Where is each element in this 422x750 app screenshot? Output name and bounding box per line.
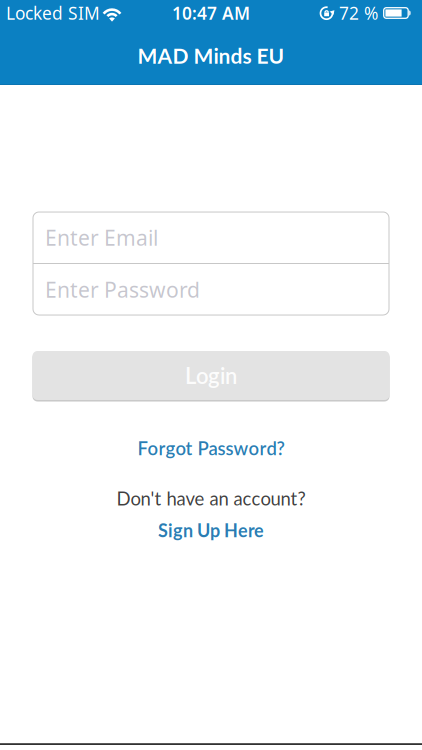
button[interactable]: Login [32, 351, 389, 400]
staticText: Login [185, 362, 237, 389]
button[interactable]: Sign Up Here [150, 519, 272, 541]
staticText: Sign Up Here [158, 519, 264, 541]
staticText: 10:47 AM [172, 1, 250, 24]
button[interactable]: Forgot Password? [129, 429, 292, 467]
button[interactable]: Enter Password [33, 264, 389, 315]
staticText: Forgot Password? [137, 437, 284, 459]
staticText: MAD Minds EU [137, 43, 284, 68]
staticText: Enter Email [45, 223, 158, 252]
staticText: Enter Password [45, 275, 200, 304]
staticText: Don't have an account? [116, 487, 305, 509]
button[interactable]: Enter Email [33, 212, 389, 263]
staticText: 72 % [339, 1, 378, 24]
staticText: Locked SIM [6, 1, 100, 24]
